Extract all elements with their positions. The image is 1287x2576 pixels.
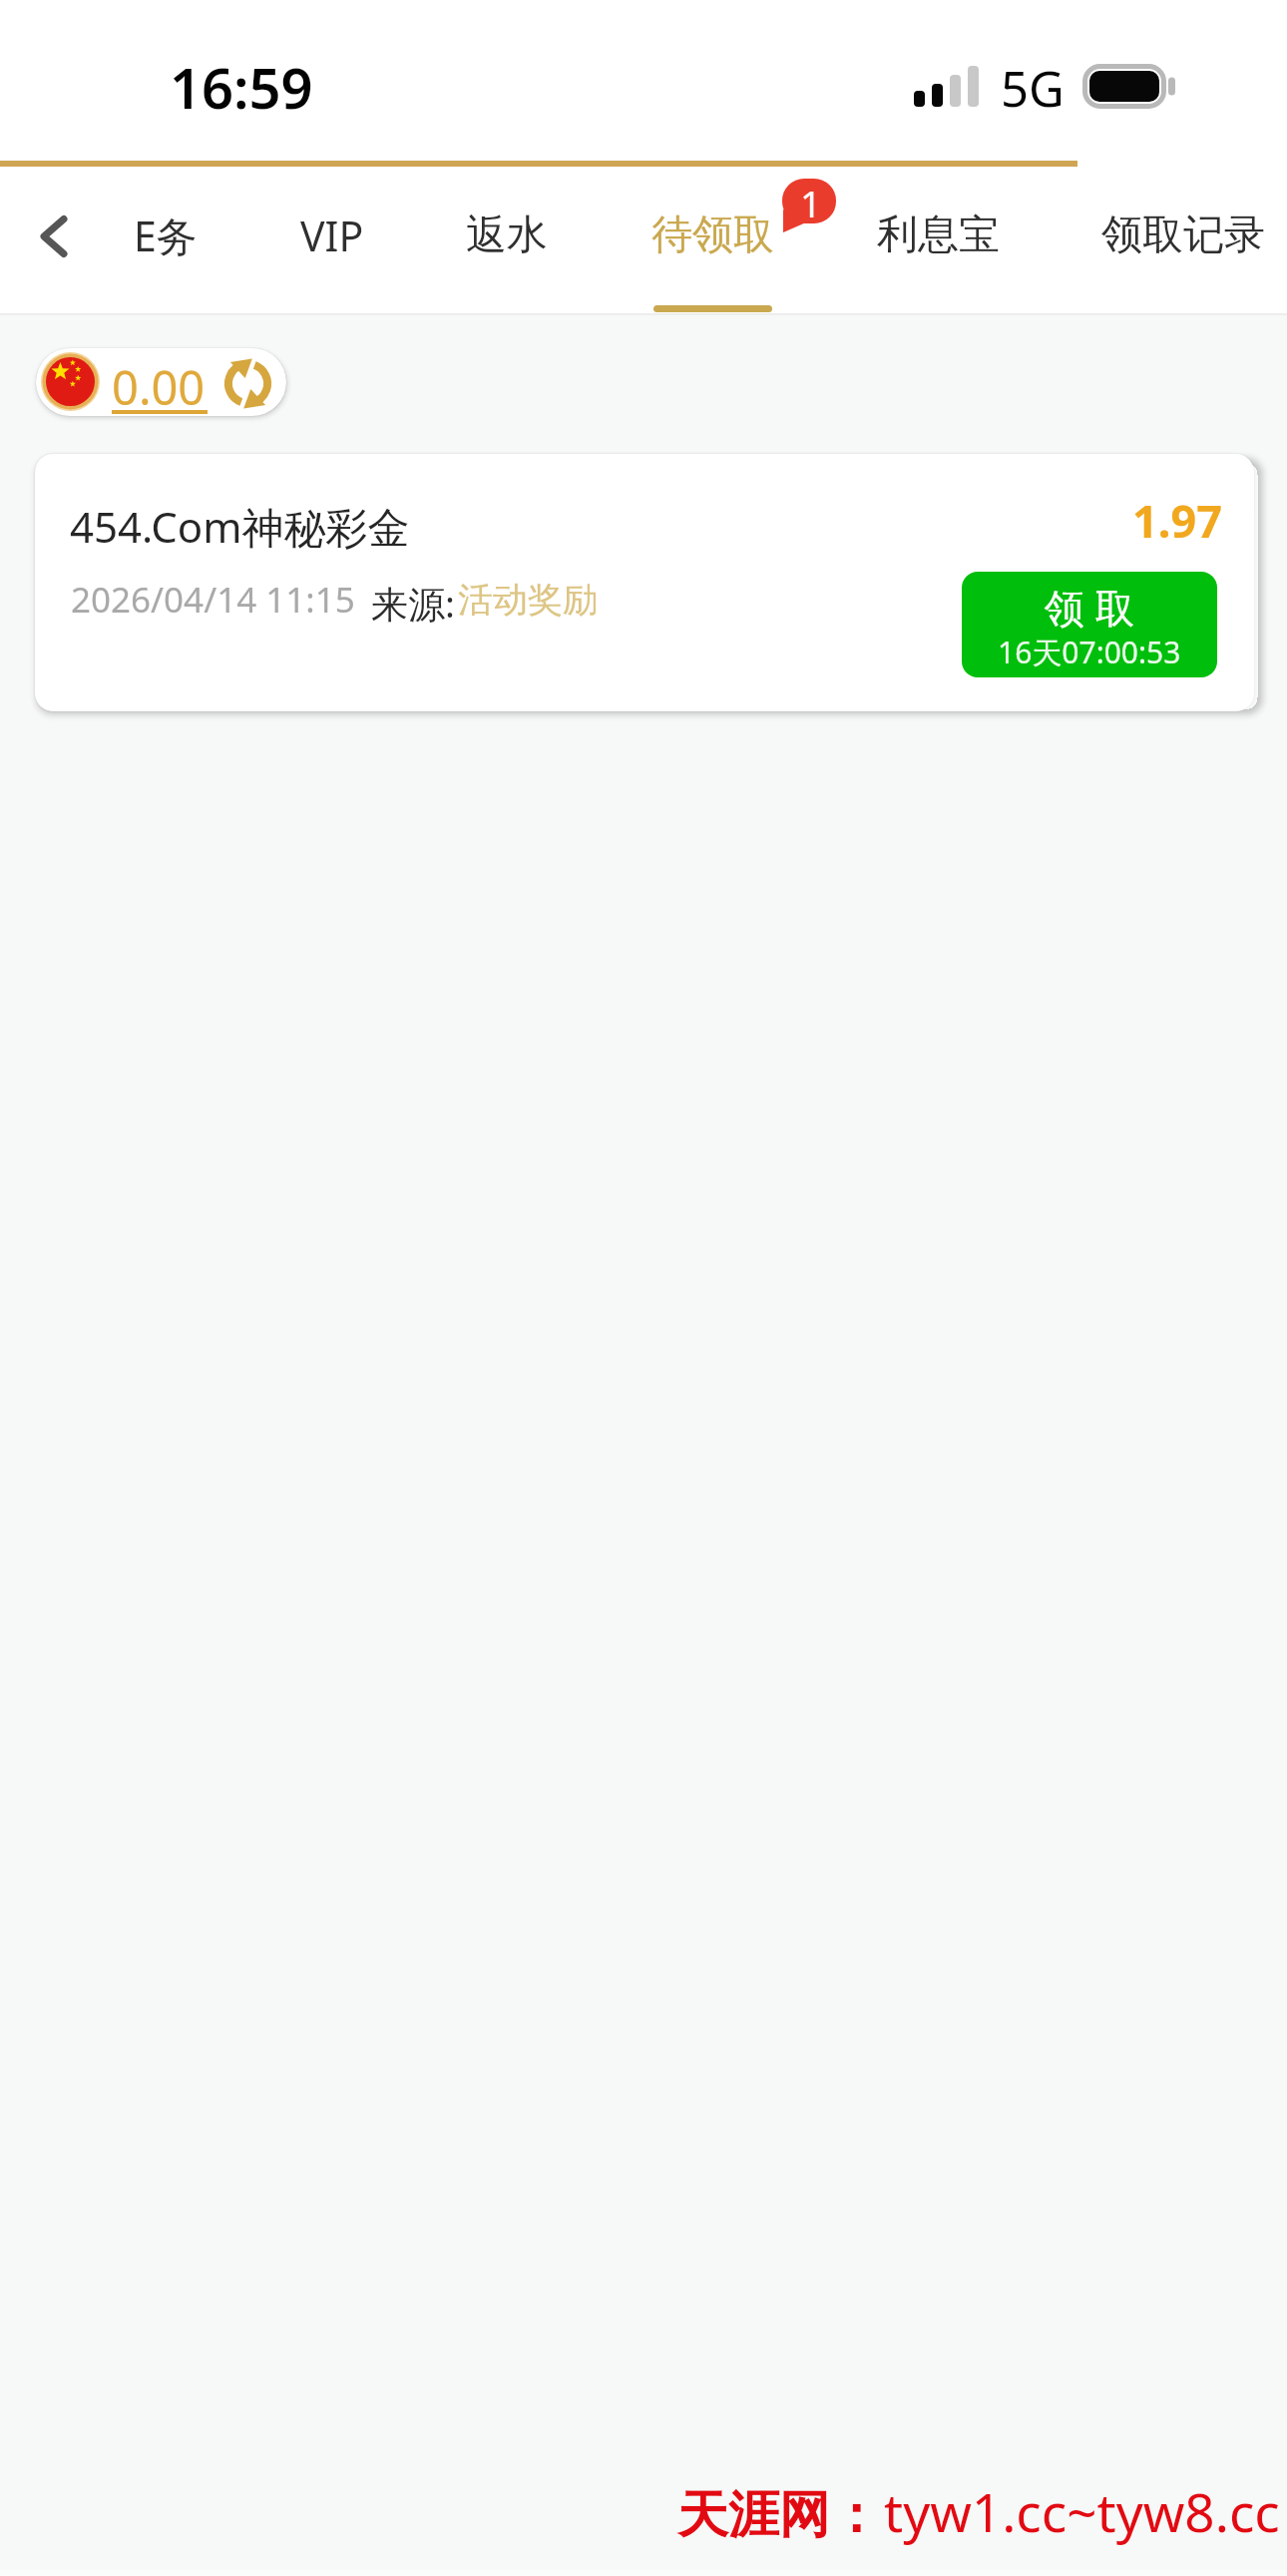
staticText: 利息宝 bbox=[877, 210, 1000, 261]
staticText: 天涯网： bbox=[677, 2483, 881, 2547]
staticText: 来源: bbox=[371, 578, 455, 629]
staticText: 16天07:00:53 bbox=[998, 632, 1181, 672]
staticText: 返水 bbox=[466, 210, 548, 261]
button[interactable]: E务 bbox=[61, 177, 270, 294]
button[interactable]: 返水 bbox=[402, 177, 612, 294]
staticText: 1 bbox=[800, 178, 822, 227]
button[interactable]: Back bbox=[0, 177, 108, 296]
button[interactable]: 待领取 bbox=[608, 177, 817, 294]
button[interactable]: 领取记录 bbox=[1078, 177, 1287, 294]
button[interactable]: VIP bbox=[227, 177, 437, 294]
staticText: E务 bbox=[134, 208, 198, 263]
button[interactable]: 454.Com神秘彩金 bbox=[35, 454, 1254, 711]
staticText: 待领取 bbox=[651, 210, 774, 261]
button[interactable]: 0.00 bbox=[36, 348, 286, 416]
other: Refresh balance bbox=[223, 359, 272, 408]
staticText: 454.Com神秘彩金 bbox=[70, 498, 410, 555]
staticText: 16:59 bbox=[170, 49, 313, 125]
staticText: 活动奖励 bbox=[458, 578, 598, 622]
button[interactable]: 领 取 bbox=[962, 572, 1217, 677]
button[interactable]: 利息宝 bbox=[833, 177, 1043, 294]
staticText: 领 取 bbox=[1045, 580, 1135, 635]
staticText: tyw1.cc~tyw8.cc bbox=[884, 2475, 1280, 2547]
staticText: 5G bbox=[1001, 55, 1065, 122]
staticText: VIP bbox=[300, 208, 364, 263]
staticText: 1.97 bbox=[1132, 490, 1222, 551]
staticText: 领取记录 bbox=[1101, 210, 1265, 261]
staticText: 2026/04/14 11:15 bbox=[71, 576, 355, 624]
staticText: 0.00 bbox=[112, 355, 206, 416]
